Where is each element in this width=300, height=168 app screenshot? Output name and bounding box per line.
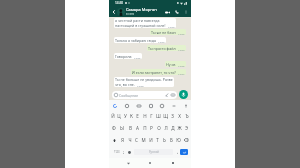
staticText: 14:30 bbox=[115, 1, 124, 5]
button[interactable]: У bbox=[122, 110, 128, 122]
staticText: Б bbox=[170, 137, 173, 143]
button[interactable]: More options bbox=[182, 8, 189, 15]
staticText: П bbox=[143, 125, 147, 131]
button[interactable]: Только я забираю сюда bbox=[114, 37, 166, 43]
staticText: в сети bbox=[126, 12, 135, 16]
button[interactable]: Voice input bbox=[183, 103, 188, 108]
button[interactable]: Ы bbox=[118, 122, 126, 134]
staticText: Х bbox=[178, 113, 181, 119]
button[interactable]: Back bbox=[110, 8, 117, 15]
staticText: я честной расти навсегда bbox=[115, 18, 160, 23]
button[interactable]: Щ bbox=[162, 110, 169, 122]
button[interactable]: К bbox=[128, 110, 134, 122]
button[interactable]: ?123 bbox=[113, 149, 121, 155]
staticText: И если застрянет, то что? bbox=[132, 70, 176, 75]
button[interactable]: Voice message bbox=[179, 90, 188, 99]
staticText: Э bbox=[185, 125, 188, 131]
button[interactable]: Р bbox=[148, 122, 155, 134]
staticText: 14:20 bbox=[168, 25, 175, 28]
staticText: Я bbox=[121, 137, 124, 143]
staticText: Р bbox=[150, 125, 153, 131]
button[interactable]: Ц bbox=[116, 110, 122, 122]
button[interactable]: Ты просто файл bbox=[147, 45, 186, 51]
staticText: Г bbox=[150, 113, 153, 119]
button[interactable]: Ж bbox=[176, 122, 183, 134]
staticText: 14:23 bbox=[158, 40, 165, 43]
button[interactable]: Emoji bbox=[159, 103, 164, 108]
button[interactable]: Language bbox=[126, 149, 132, 155]
button[interactable]: Enter bbox=[180, 149, 188, 155]
button[interactable]: В bbox=[126, 122, 134, 134]
staticText: Ь bbox=[163, 137, 166, 143]
button[interactable]: П bbox=[141, 122, 148, 134]
staticText: Русский bbox=[149, 150, 159, 154]
staticText: Ж bbox=[177, 125, 182, 131]
staticText: В bbox=[129, 125, 132, 131]
button[interactable]: Video call bbox=[162, 7, 172, 17]
button[interactable]: я честной расти навсегда bbox=[114, 18, 176, 28]
button[interactable]: И если застрянет, то что? bbox=[131, 69, 186, 75]
button[interactable]: Ты же не баян bbox=[150, 29, 186, 35]
button[interactable]: Comma bbox=[121, 149, 126, 155]
staticText: Ну ок bbox=[166, 62, 176, 67]
button[interactable]: Сообщение bbox=[112, 91, 177, 99]
button[interactable]: Space bbox=[134, 149, 173, 155]
staticText: А bbox=[136, 125, 139, 131]
staticText: что, во сне. bbox=[115, 82, 135, 87]
staticText: Д bbox=[171, 125, 175, 131]
button[interactable]: Ш bbox=[155, 110, 162, 122]
button[interactable]: Т bbox=[154, 134, 161, 146]
button[interactable]: Backspace bbox=[182, 134, 190, 146]
button[interactable]: Д bbox=[169, 122, 176, 134]
button[interactable]: Ну ок bbox=[165, 61, 186, 67]
staticText: настоящей в страшной силе! bbox=[115, 23, 166, 28]
button[interactable]: Stickers bbox=[124, 103, 129, 108]
button[interactable]: Б bbox=[168, 134, 175, 146]
button[interactable]: О bbox=[155, 122, 162, 134]
staticText: Самара Морган bbox=[126, 7, 157, 12]
button[interactable]: З bbox=[169, 110, 176, 122]
staticText: Только я забираю сюда bbox=[115, 38, 156, 43]
button[interactable]: И bbox=[147, 134, 154, 146]
staticText: Ц bbox=[117, 113, 121, 119]
button[interactable]: More bbox=[171, 103, 176, 108]
button[interactable]: Back bbox=[124, 159, 132, 167]
button[interactable]: Call bbox=[172, 7, 182, 17]
button[interactable]: Говорила bbox=[114, 53, 142, 59]
staticText: М bbox=[141, 137, 146, 143]
staticText: Ш bbox=[156, 113, 161, 119]
button[interactable]: Г bbox=[148, 110, 155, 122]
staticText: Ъ bbox=[185, 113, 189, 119]
button[interactable]: Ю bbox=[175, 134, 182, 146]
button[interactable]: Recents bbox=[169, 159, 177, 167]
button[interactable]: А bbox=[134, 122, 141, 134]
staticText: У bbox=[124, 113, 127, 119]
button[interactable]: Я bbox=[119, 134, 126, 146]
button[interactable]: Ты не больше не увидишь. Разве bbox=[114, 77, 174, 87]
button[interactable]: Л bbox=[162, 122, 169, 134]
button[interactable]: Й bbox=[110, 110, 116, 122]
button[interactable]: Ф bbox=[110, 122, 118, 134]
button[interactable]: Е bbox=[134, 110, 141, 122]
button[interactable]: Х bbox=[176, 110, 183, 122]
staticText: Щ bbox=[163, 113, 168, 119]
button[interactable]: Shift bbox=[110, 134, 119, 146]
button[interactable]: Э bbox=[183, 122, 190, 134]
button[interactable]: М bbox=[140, 134, 147, 146]
button[interactable]: Ъ bbox=[183, 110, 190, 122]
button[interactable]: Ь bbox=[161, 134, 168, 146]
button[interactable]: Search bbox=[112, 103, 117, 108]
staticText: 14:22 bbox=[178, 32, 185, 35]
staticText: Ы bbox=[120, 125, 124, 131]
staticText: ?123 bbox=[114, 150, 120, 154]
button[interactable]: Н bbox=[141, 110, 148, 122]
button[interactable]: GIF bbox=[136, 103, 141, 108]
button[interactable]: С bbox=[133, 134, 140, 146]
staticText: Т bbox=[156, 137, 159, 143]
button[interactable]: Ч bbox=[126, 134, 133, 146]
staticText: К bbox=[130, 113, 133, 119]
button[interactable]: Period bbox=[175, 149, 180, 155]
button[interactable]: Home bbox=[146, 159, 154, 167]
button[interactable]: Clipboard bbox=[148, 103, 153, 108]
staticText: Ф bbox=[112, 125, 116, 131]
